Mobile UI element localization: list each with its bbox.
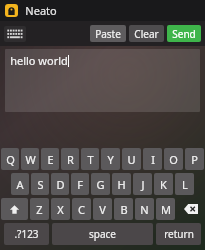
button[interactable]: P (185, 148, 204, 170)
button[interactable]: O (164, 148, 183, 170)
staticText: A (16, 177, 24, 192)
button[interactable]: D (51, 173, 69, 195)
button[interactable]: U (122, 148, 141, 170)
button[interactable]: Z (30, 198, 49, 220)
button[interactable]: A (11, 173, 29, 195)
staticText: Paste (95, 27, 121, 41)
button[interactable]: space (52, 223, 153, 245)
button[interactable]: N (135, 198, 154, 220)
button[interactable]: Y (101, 148, 120, 170)
button[interactable]: B (114, 198, 133, 220)
button[interactable]: E (41, 148, 59, 170)
staticText: O (169, 152, 178, 167)
button[interactable]: return (156, 223, 201, 245)
button[interactable]: Toggle keyboard (4, 26, 26, 42)
staticText: M (161, 202, 171, 217)
staticText: C (78, 202, 85, 217)
staticText: Send (172, 27, 196, 41)
staticText: S (37, 177, 44, 192)
button[interactable]: Backspace (177, 198, 204, 220)
staticText: K (160, 177, 167, 192)
staticText: V (99, 202, 106, 217)
button[interactable]: K (154, 173, 173, 195)
staticText: Z (36, 202, 43, 217)
button[interactable]: F (71, 173, 89, 195)
staticText: F (77, 177, 83, 192)
button[interactable]: R (61, 148, 79, 170)
button[interactable]: Paste (90, 25, 126, 42)
button[interactable]: G (91, 173, 110, 195)
button[interactable]: .?123 (4, 223, 49, 245)
staticText: space (89, 227, 116, 241)
staticText: R (67, 152, 74, 167)
staticText: hello world (10, 53, 68, 68)
button[interactable]: Send (167, 25, 201, 42)
button[interactable]: X (51, 198, 70, 220)
button[interactable]: I (143, 148, 162, 170)
button[interactable]: Shift (1, 198, 28, 220)
button[interactable]: J (133, 173, 152, 195)
staticText: G (96, 177, 105, 192)
staticText: D (56, 177, 65, 192)
staticText: E (47, 152, 54, 167)
staticText: .?123 (14, 227, 39, 241)
staticText: N (140, 202, 149, 217)
button[interactable]: M (156, 198, 175, 220)
staticText: W (25, 152, 36, 167)
button[interactable]: L (175, 173, 194, 195)
staticText: return (164, 227, 194, 241)
button[interactable]: T (81, 148, 99, 170)
button[interactable]: V (93, 198, 112, 220)
button[interactable]: W (21, 148, 39, 170)
staticText: U (127, 152, 136, 167)
staticText: B (120, 202, 128, 217)
staticText: P (191, 152, 198, 167)
button[interactable]: hello world (5, 49, 200, 112)
staticText: I (151, 152, 155, 167)
staticText: L (182, 177, 188, 192)
button[interactable]: C (72, 198, 91, 220)
staticText: J (141, 177, 145, 192)
button[interactable]: Clear (129, 25, 164, 42)
button[interactable]: Q (1, 148, 19, 170)
staticText: Y (107, 152, 114, 167)
staticText: X (57, 202, 64, 217)
staticText: Neato (25, 3, 57, 18)
staticText: T (87, 152, 94, 167)
button[interactable]: S (31, 173, 49, 195)
staticText: Q (6, 152, 15, 167)
staticText: H (117, 177, 126, 192)
button[interactable]: H (112, 173, 131, 195)
staticText: Clear (134, 27, 159, 41)
